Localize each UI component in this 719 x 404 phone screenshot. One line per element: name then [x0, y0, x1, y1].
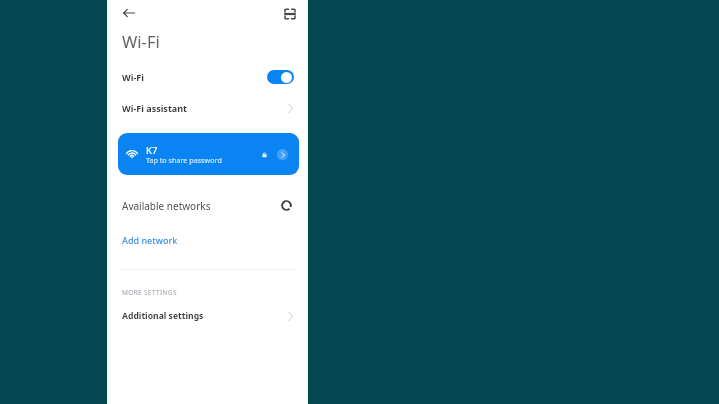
button[interactable]: Back: [119, 3, 139, 23]
button[interactable]: Scan QR code: [282, 7, 298, 21]
staticText: Available networks: [122, 199, 211, 213]
staticText: MORE SETTINGS: [122, 288, 177, 297]
button[interactable]: Additional settings: [107, 304, 308, 328]
staticText: Add network: [122, 234, 178, 246]
staticText: Wi-Fi: [122, 30, 160, 52]
staticText: Additional settings: [122, 310, 204, 322]
button[interactable]: Wi-Fi: [107, 64, 308, 90]
staticText: K7: [146, 144, 158, 157]
staticText: Wi-Fi assistant: [122, 102, 187, 114]
button[interactable]: Refresh: [279, 199, 293, 213]
button[interactable]: Add network: [107, 229, 308, 250]
staticText: Wi-Fi: [122, 71, 144, 83]
button[interactable]: K7: [118, 133, 299, 175]
staticText: Tap to share password: [146, 155, 222, 165]
button[interactable]: Wi-Fi assistant: [107, 95, 308, 121]
